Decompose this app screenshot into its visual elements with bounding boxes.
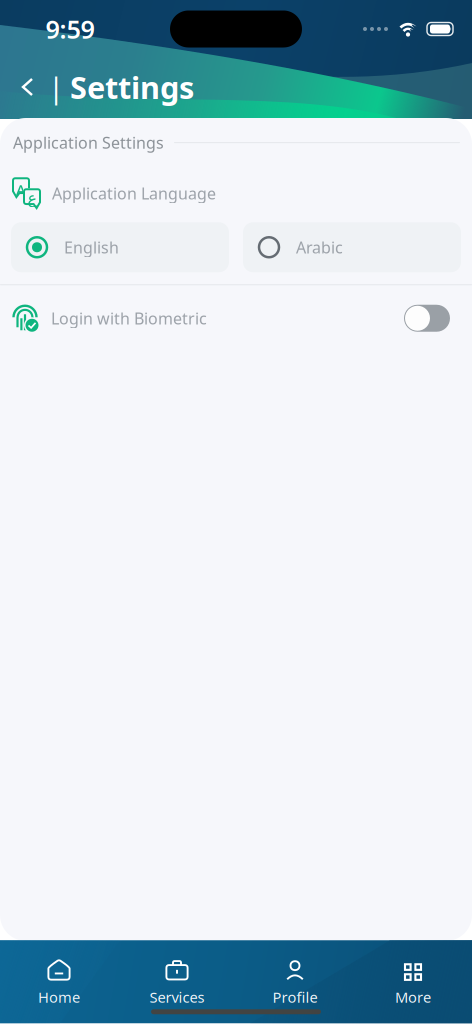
staticText: Settings bbox=[70, 67, 194, 107]
staticText: A bbox=[16, 180, 26, 199]
button[interactable]: Arabic bbox=[243, 222, 461, 272]
staticText: English bbox=[64, 237, 119, 258]
staticText: Profile bbox=[272, 987, 317, 1007]
button[interactable]: Home bbox=[0, 940, 118, 1017]
staticText: ع bbox=[27, 189, 37, 207]
button[interactable]: Profile bbox=[236, 940, 354, 1017]
button[interactable]: Services bbox=[118, 940, 236, 1017]
staticText: Login with Biometric bbox=[51, 308, 207, 329]
staticText: More bbox=[395, 987, 431, 1007]
staticText: Services bbox=[149, 987, 204, 1007]
button[interactable]: English bbox=[11, 222, 229, 272]
staticText: | bbox=[48, 67, 64, 106]
staticText: Application Settings bbox=[13, 132, 164, 153]
button[interactable]: More bbox=[354, 940, 472, 1017]
staticText: Arabic bbox=[296, 237, 343, 258]
staticText: Home bbox=[38, 987, 80, 1007]
staticText: Application Language bbox=[52, 183, 216, 204]
button[interactable]: Back bbox=[0, 66, 48, 108]
staticText: 9:59 bbox=[45, 12, 94, 46]
